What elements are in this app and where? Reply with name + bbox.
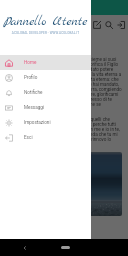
button[interactable]: Profilo	[0, 70, 91, 85]
staticText: Profilo	[24, 75, 38, 80]
button[interactable]: Messaggi	[0, 100, 91, 115]
button[interactable]: Login	[115, 19, 127, 31]
staticText: Pannello Utente	[0, 13, 91, 30]
button[interactable]: Search	[103, 19, 115, 31]
button[interactable]	[0, 15, 128, 256]
button[interactable]: Home	[0, 55, 91, 70]
staticText: Impostazioni	[24, 120, 51, 125]
staticText: Non prego solo per questi, ma anche per …	[7, 117, 122, 147]
button[interactable]: Esci	[0, 130, 91, 145]
staticText: Messaggi	[24, 105, 44, 110]
button[interactable]: Notifiche	[0, 85, 91, 100]
button[interactable]: Compose	[91, 19, 103, 31]
button[interactable]: Back	[20, 243, 30, 253]
staticText: Esci	[24, 135, 33, 140]
button[interactable]: Impostazioni	[0, 115, 91, 130]
staticText: Notifiche	[24, 90, 43, 95]
button[interactable]: Home	[61, 246, 70, 249]
staticText: Home	[24, 60, 37, 65]
staticText: ACGLOBAL DEVELOPER - WWW.ACGLOBAL.IT	[0, 31, 91, 35]
staticText: In quel tempo, Gesu, uscito dal tempio i…	[7, 57, 122, 112]
